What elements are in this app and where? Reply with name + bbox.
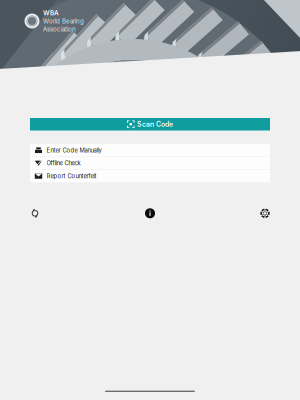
button[interactable]: Report Counterfeit <box>30 170 270 182</box>
staticText: WBA <box>43 9 59 17</box>
staticText: Scan Code <box>137 120 173 128</box>
staticText: Report Counterfeit <box>46 172 96 180</box>
button[interactable]: Enter Code Manually <box>30 144 270 156</box>
staticText: Offline Check <box>46 160 80 167</box>
button[interactable]: Offline Check <box>30 157 270 169</box>
staticText: World Bearing <box>43 17 84 25</box>
button[interactable]: Settings <box>260 208 270 218</box>
button[interactable]: Information <box>145 208 155 218</box>
staticText: Enter Code Manually <box>46 147 101 154</box>
button[interactable]: Refresh <box>30 208 40 218</box>
button[interactable]: Scan Code <box>30 118 270 130</box>
staticText: Association <box>43 25 76 33</box>
